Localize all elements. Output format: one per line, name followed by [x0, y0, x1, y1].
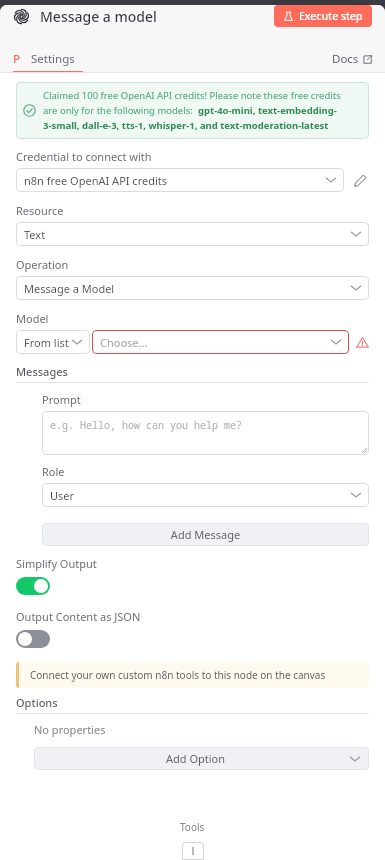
staticText: e.g. Hello, how can you help me? — [50, 418, 242, 432]
staticText: User — [50, 488, 350, 503]
other: Warning — [355, 335, 369, 349]
staticText: Choose... — [100, 335, 330, 350]
staticText: n8n free OpenAI API credits — [24, 173, 325, 188]
staticText: Text — [24, 227, 350, 242]
staticText: Docs — [332, 51, 359, 67]
button[interactable]: From list — [16, 330, 90, 354]
button[interactable]: Docs — [332, 45, 372, 73]
button[interactable]: Choose... — [92, 330, 349, 354]
staticText: From list — [24, 335, 71, 350]
button[interactable]: Toggle on — [16, 577, 50, 595]
button[interactable]: User — [42, 483, 369, 507]
staticText: Message a model — [40, 7, 274, 26]
staticText: gpt-4o-mini, text-embedding- — [198, 104, 337, 117]
button[interactable]: n8n free OpenAI API credits — [16, 168, 344, 192]
staticText: Role — [42, 464, 65, 479]
button[interactable]: Add tool — [182, 842, 204, 860]
button[interactable]: Settings — [25, 45, 81, 73]
staticText: Add Message — [50, 527, 361, 542]
button[interactable]: Toggle off — [16, 630, 50, 648]
staticText: 3-small, dall-e-3, tts-1, whisper-1, and… — [43, 119, 329, 132]
staticText: Model — [16, 311, 49, 326]
staticText: Add Option — [42, 751, 349, 766]
staticText: Simplify Output — [16, 556, 97, 571]
staticText: Claimed 100 free OpenAI API credits! Ple… — [43, 89, 341, 102]
staticText: Prompt — [42, 392, 81, 407]
staticText: are only for the following models: — [43, 104, 198, 117]
staticText: Message a Model — [24, 281, 350, 296]
button[interactable]: Add Message — [42, 523, 369, 546]
staticText: Output Content as JSON — [16, 609, 141, 624]
staticText: Credential to connect with — [16, 149, 152, 164]
button[interactable]: Message a Model — [16, 276, 369, 300]
staticText: Options — [16, 695, 58, 710]
staticText: Resource — [16, 203, 64, 218]
staticText: Connect your own custom n8n tools to thi… — [30, 668, 326, 682]
button[interactable]: e.g. Hello, how can you help me? — [42, 411, 369, 455]
staticText: Tools — [180, 820, 205, 834]
staticText: Settings — [31, 51, 75, 67]
button[interactable]: Text — [16, 222, 369, 246]
staticText: Operation — [16, 257, 69, 272]
button[interactable]: Execute step — [274, 5, 372, 27]
button[interactable]: Edit credential — [351, 171, 369, 189]
button[interactable]: Add Option — [34, 747, 369, 770]
staticText: Execute step — [299, 9, 363, 23]
staticText: No properties — [34, 722, 106, 737]
staticText: Messages — [16, 364, 68, 379]
